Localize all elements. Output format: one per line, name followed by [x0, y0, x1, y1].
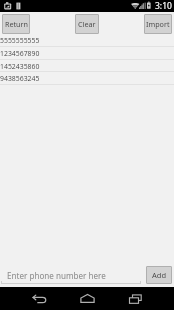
staticText: Add — [152, 270, 167, 280]
button[interactable]: Add — [146, 266, 172, 284]
staticText: 1234567890 — [0, 49, 40, 58]
button[interactable]: Clear — [75, 14, 99, 34]
button[interactable]: 1452435860 — [0, 60, 174, 72]
staticText: Clear — [78, 19, 96, 29]
button[interactable]: Recent apps — [118, 287, 152, 310]
button[interactable]: Import — [144, 14, 172, 34]
staticText: Return — [5, 19, 28, 29]
button[interactable]: 1234567890 — [0, 47, 174, 60]
staticText: 9438563245 — [0, 74, 40, 83]
staticText: Import — [146, 19, 170, 29]
button[interactable]: Return — [2, 14, 30, 34]
staticText: 5555555555 — [0, 36, 40, 45]
staticText: 3:10 — [155, 0, 172, 12]
button[interactable]: Back — [22, 287, 56, 310]
button[interactable]: 9438563245 — [0, 72, 174, 85]
button[interactable]: Enter phone number here — [1, 265, 141, 285]
button[interactable]: Home — [70, 287, 104, 310]
button[interactable]: 5555555555 — [0, 34, 174, 47]
staticText: Enter phone number here — [7, 270, 106, 281]
staticText: 1452435860 — [0, 62, 40, 71]
